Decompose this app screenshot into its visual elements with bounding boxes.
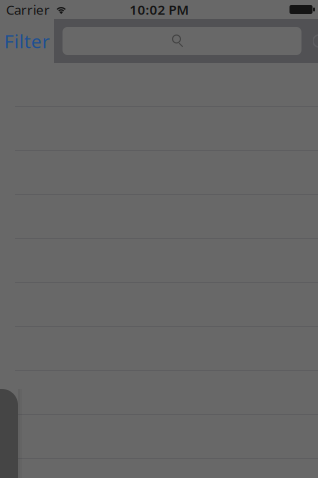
staticText: Filter <box>4 29 50 53</box>
staticText: Carrier <box>6 1 50 18</box>
staticText: 10:02 PM <box>129 1 188 18</box>
button[interactable]: Filter <box>0 19 54 63</box>
button[interactable] <box>0 415 318 459</box>
button[interactable] <box>0 459 318 478</box>
button[interactable] <box>0 371 318 415</box>
button[interactable]: Add <box>313 19 318 63</box>
